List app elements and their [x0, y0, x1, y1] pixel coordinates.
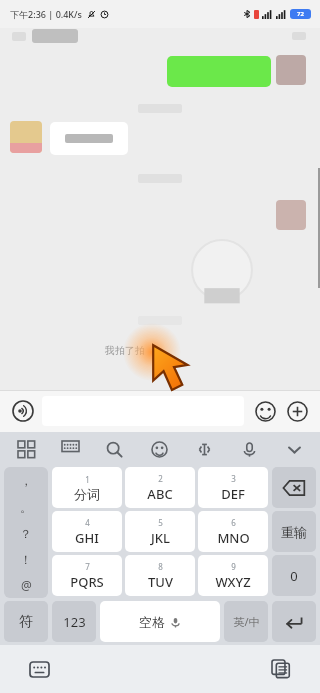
button[interactable]: Clipboard — [266, 654, 296, 684]
button[interactable]: Backspace — [272, 467, 316, 508]
button[interactable] — [276, 200, 306, 230]
button[interactable]: 4 — [52, 511, 122, 552]
button[interactable]: ， — [4, 467, 48, 494]
staticText: 符 — [19, 613, 33, 631]
staticText: 1 — [85, 474, 90, 485]
button[interactable]: Voice input — [10, 398, 36, 424]
staticText: GHI — [75, 529, 99, 547]
staticText: TUV — [148, 573, 173, 591]
button[interactable]: 符 — [4, 601, 48, 642]
button[interactable]: 空格 — [100, 601, 220, 642]
staticText: ABC — [147, 485, 173, 503]
button[interactable]: 0 — [272, 555, 316, 596]
button[interactable]: More — [284, 398, 310, 424]
staticText: 8 — [158, 561, 163, 572]
staticText: MNO — [217, 529, 250, 547]
button[interactable]: 6 — [198, 511, 268, 552]
button[interactable]: @ — [4, 572, 48, 598]
staticText: DEF — [221, 485, 245, 503]
button[interactable]: Keyboard layout — [56, 435, 84, 463]
staticText: JKL — [151, 529, 170, 547]
staticText: @ — [21, 577, 32, 593]
button[interactable] — [50, 122, 128, 155]
button[interactable]: 5 — [125, 511, 195, 552]
staticText: 下午2:36 | 0.4K/s — [10, 8, 82, 20]
staticText: 重输 — [281, 524, 307, 540]
staticText: 3 — [231, 473, 236, 484]
button[interactable]: ！ — [4, 546, 48, 572]
button[interactable] — [276, 55, 306, 85]
button[interactable]: Emoji panel — [145, 435, 173, 463]
staticText: 5 — [158, 517, 163, 528]
button[interactable]: Search — [100, 435, 128, 463]
button[interactable] — [167, 56, 271, 87]
button[interactable]: 8 — [125, 555, 195, 596]
button[interactable]: 英/中 — [224, 601, 268, 642]
button[interactable]: Cursor move — [190, 435, 218, 463]
button[interactable]: 123 — [52, 601, 96, 642]
button[interactable]: Symbols grid — [12, 435, 40, 463]
staticText: 2 — [158, 473, 163, 484]
button[interactable]: 重输 — [272, 511, 316, 552]
button[interactable]: 3 — [198, 467, 268, 508]
staticText: ！ — [20, 552, 32, 567]
button[interactable]: Enter — [272, 601, 316, 642]
button[interactable]: Emoji — [252, 398, 278, 424]
button[interactable]: 2 — [125, 467, 195, 508]
staticText: PQRS — [70, 573, 104, 591]
staticText: WXYZ — [215, 573, 251, 591]
button[interactable]: Switch keyboard — [24, 654, 54, 684]
staticText: 9 — [231, 561, 236, 572]
button[interactable]: Hide keyboard — [280, 435, 308, 463]
staticText: 英/中 — [233, 614, 260, 629]
button[interactable]: Voice — [235, 435, 263, 463]
button[interactable] — [10, 121, 42, 153]
staticText: 6 — [231, 517, 236, 528]
button[interactable]: 9 — [198, 555, 268, 596]
staticText: 我拍了拍 — [105, 344, 145, 357]
button[interactable]: 7 — [52, 555, 122, 596]
staticText: ？ — [20, 526, 32, 541]
staticText: 4 — [85, 517, 90, 528]
staticText: 7 — [85, 561, 90, 572]
staticText: 。 — [20, 500, 32, 515]
staticText: 123 — [63, 613, 86, 631]
staticText: 72 — [297, 10, 304, 18]
staticText: ， — [20, 473, 32, 488]
button[interactable]: ？ — [4, 520, 48, 546]
staticText: 分词 — [74, 486, 100, 502]
button[interactable]: 1 — [52, 467, 122, 508]
staticText: 空格 — [139, 614, 165, 630]
staticText: 0 — [290, 567, 298, 585]
button[interactable]: 。 — [4, 494, 48, 520]
